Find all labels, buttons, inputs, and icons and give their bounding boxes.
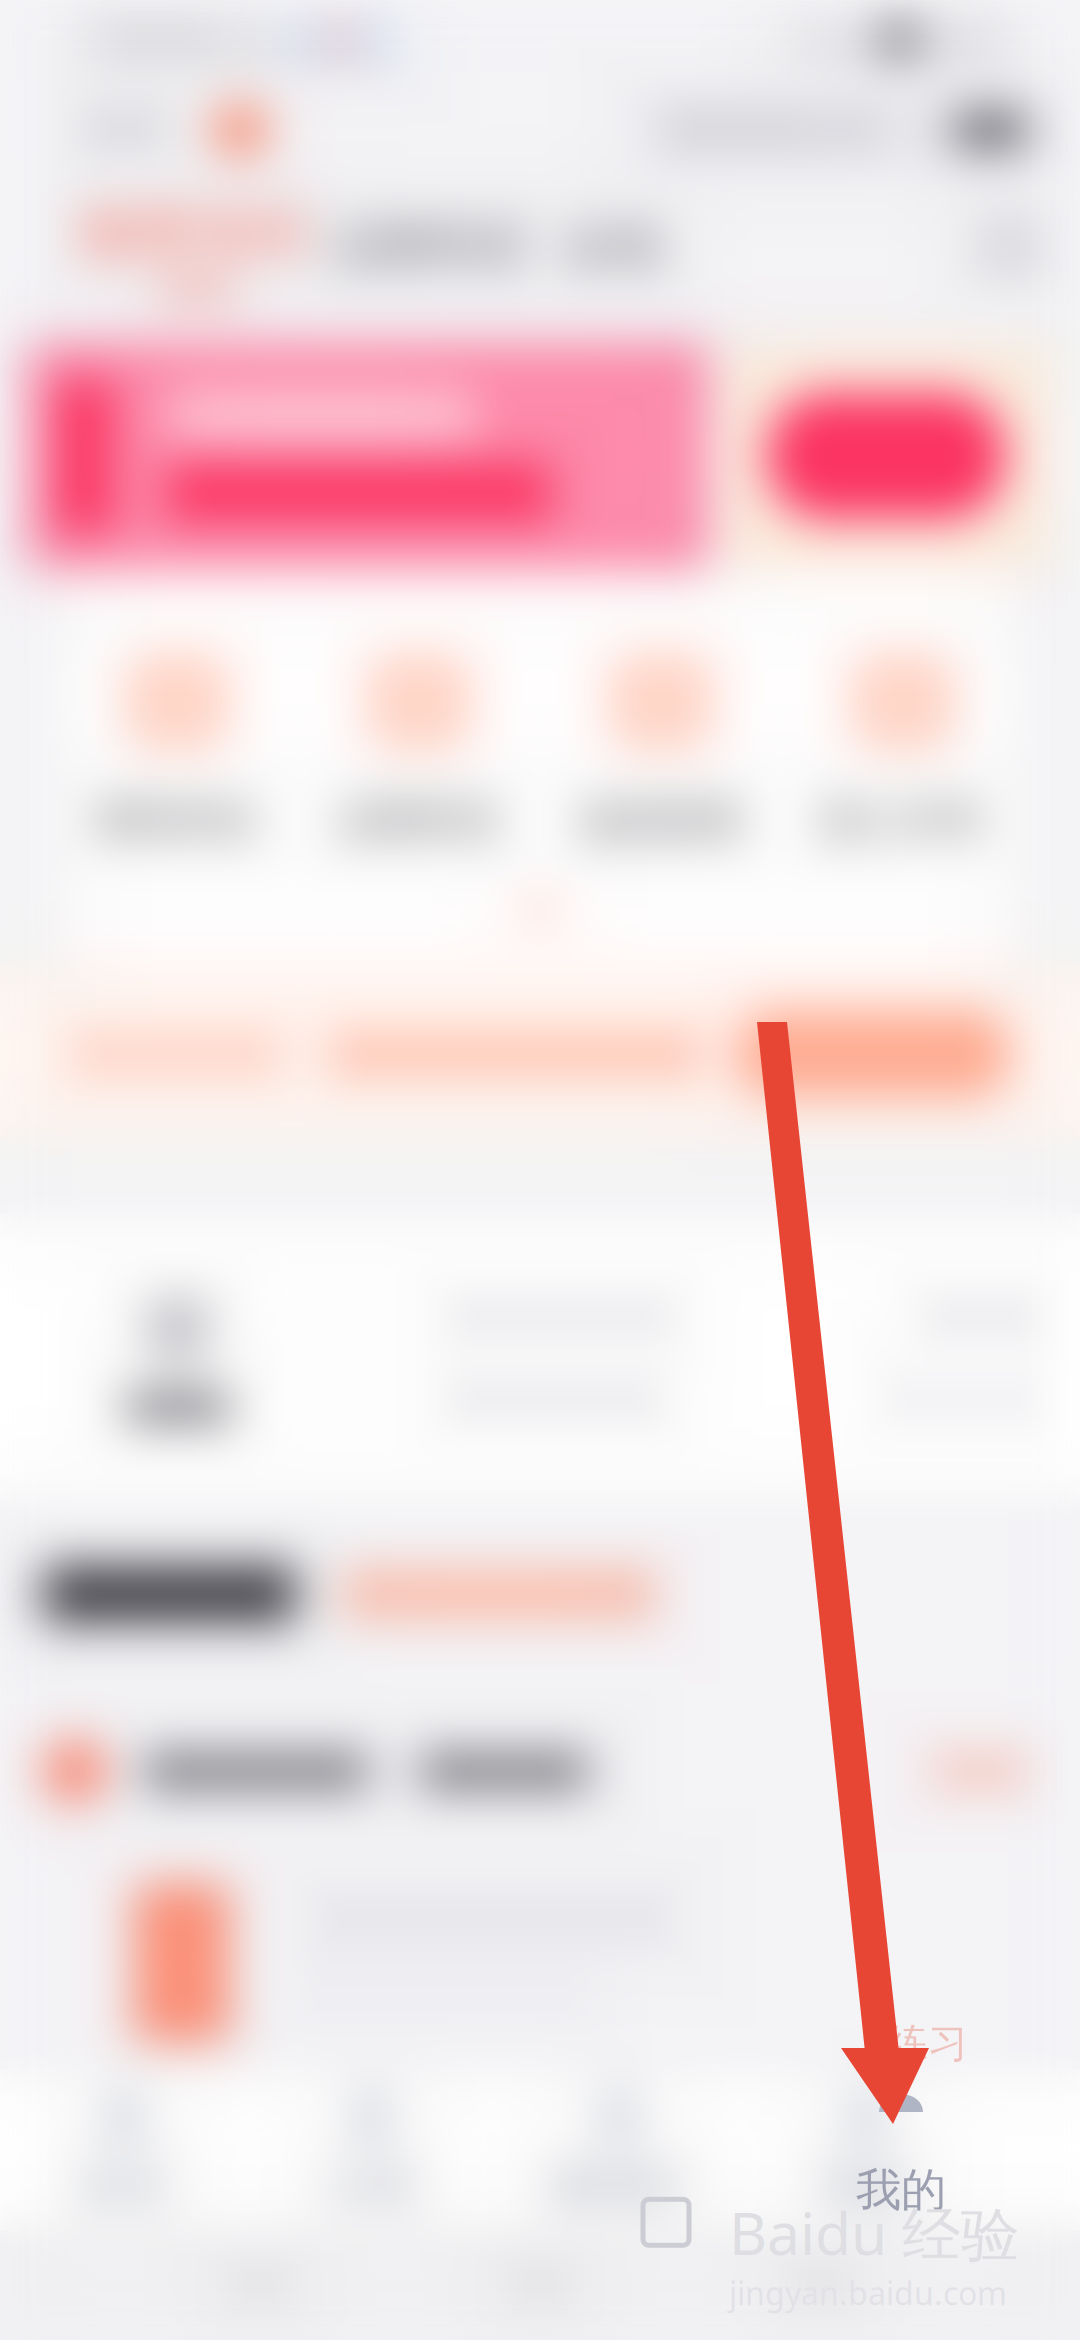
staticText: Baidu 经验 bbox=[729, 2193, 1020, 2271]
button[interactable]: 搜索商品名称 bbox=[644, 101, 1050, 159]
button[interactable]: 超值拼团 bbox=[540, 652, 782, 845]
button[interactable]: 会场 bbox=[538, 176, 686, 316]
staticText: 9:41 bbox=[794, 20, 860, 64]
button[interactable]: 推荐专区 bbox=[72, 176, 322, 316]
button[interactable]: 我的 bbox=[816, 2068, 986, 2218]
button[interactable] bbox=[0, 1856, 1080, 2070]
staticText: 练习 bbox=[888, 2019, 968, 2068]
staticText: 品牌特卖 bbox=[339, 796, 499, 845]
staticText: 新人专享 bbox=[823, 796, 983, 845]
staticText: 我的 bbox=[856, 2162, 946, 2218]
button[interactable]: 我的 bbox=[742, 2070, 990, 2230]
button[interactable] bbox=[0, 1686, 1080, 1856]
button[interactable]: 搜索 bbox=[962, 176, 1058, 316]
staticText: 限时秒杀 bbox=[97, 796, 257, 845]
staticText: 超值拼团 bbox=[581, 796, 741, 845]
button[interactable]: 限时秒杀 bbox=[56, 652, 298, 845]
staticText: 推荐专区 bbox=[79, 198, 315, 270]
staticText: 会场 bbox=[564, 216, 660, 275]
button[interactable]: 首页 bbox=[0, 2070, 247, 2230]
staticText: 83% bbox=[938, 20, 1004, 64]
staticText: 品牌特卖 bbox=[334, 216, 526, 275]
staticText: 我的 bbox=[821, 2158, 911, 2214]
button[interactable]: 新人专享 bbox=[782, 652, 1024, 845]
staticText: jingyan.baidu.com bbox=[729, 2271, 1007, 2314]
button[interactable] bbox=[28, 342, 708, 570]
button[interactable]: 品牌特卖 bbox=[322, 176, 538, 316]
button[interactable]: 品牌特卖 bbox=[298, 652, 540, 845]
button[interactable]: 分类 bbox=[247, 2070, 495, 2230]
button[interactable] bbox=[720, 342, 1052, 570]
staticText: 购物车 bbox=[551, 2158, 686, 2214]
button[interactable]: 购物车 bbox=[495, 2070, 742, 2230]
